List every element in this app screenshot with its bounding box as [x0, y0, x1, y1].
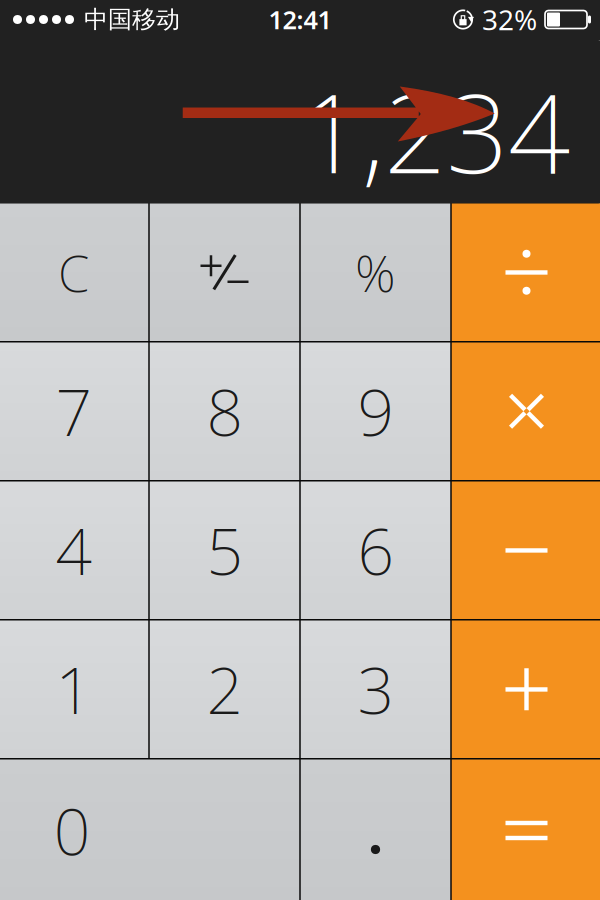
- staticText: 0: [54, 788, 90, 873]
- staticText: 3: [357, 647, 393, 732]
- button[interactable]: Divide: [452, 203, 600, 341]
- button[interactable]: Clear: [0, 203, 148, 341]
- button[interactable]: 7: [0, 342, 148, 480]
- button[interactable]: 4: [0, 481, 148, 619]
- button[interactable]: 2: [150, 620, 299, 758]
- staticText: 32%: [482, 1, 537, 38]
- staticText: 2: [206, 647, 242, 732]
- button[interactable]: 1: [0, 620, 148, 758]
- staticText: 1,234: [300, 58, 570, 203]
- button[interactable]: 9: [301, 342, 450, 480]
- staticText: 1: [55, 647, 91, 732]
- button[interactable]: 8: [150, 342, 299, 480]
- button[interactable]: Equals: [452, 759, 600, 900]
- staticText: %: [355, 239, 396, 306]
- button[interactable]: 6: [301, 481, 450, 619]
- button[interactable]: 3: [301, 620, 450, 758]
- button[interactable]: Minus: [452, 481, 600, 619]
- staticText: 7: [55, 369, 91, 454]
- staticText: 12:41: [268, 3, 331, 36]
- staticText: 5: [206, 508, 242, 593]
- button[interactable]: Percent: [301, 203, 450, 341]
- staticText: 9: [357, 369, 393, 454]
- button[interactable]: Decimal point: [301, 759, 450, 900]
- button[interactable]: Plus: [452, 620, 600, 758]
- button[interactable]: 0: [0, 759, 299, 900]
- staticText: 中国移动: [84, 5, 180, 34]
- staticText: 4: [55, 508, 91, 593]
- button[interactable]: Multiply: [452, 342, 600, 480]
- staticText: 6: [357, 508, 393, 593]
- button[interactable]: 5: [150, 481, 299, 619]
- button[interactable]: Plus minus: [150, 203, 299, 341]
- staticText: 8: [206, 369, 242, 454]
- staticText: C: [58, 239, 89, 306]
